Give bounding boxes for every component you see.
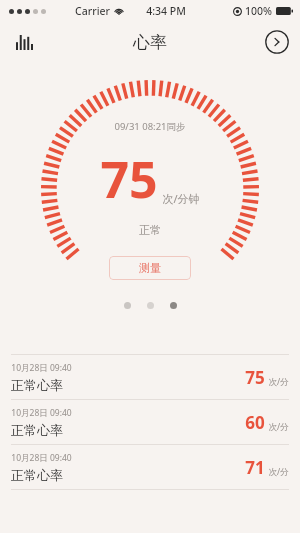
staticText: 次/分	[268, 466, 289, 478]
staticText: 10月28日 09:40	[11, 452, 72, 464]
staticText: Carrier	[75, 4, 110, 18]
staticText: 次/分	[268, 376, 289, 388]
staticText: 测量	[139, 261, 161, 275]
button[interactable]: 10月28日 09:40	[0, 355, 300, 399]
staticText: 71	[245, 456, 265, 479]
button[interactable]: Next	[264, 29, 290, 55]
staticText: 正常心率	[11, 377, 63, 393]
button[interactable]: Statistics	[8, 26, 40, 58]
staticText: 次/分钟	[162, 191, 200, 206]
button[interactable]: 测量	[109, 256, 191, 280]
staticText: 75	[100, 145, 158, 213]
button[interactable]: 10月28日 09:40	[0, 400, 300, 444]
staticText: 75	[245, 366, 265, 389]
staticText: 100%	[245, 4, 272, 18]
staticText: 正常	[139, 223, 161, 237]
staticText: 心率	[133, 32, 167, 53]
staticText: 4:34 PM	[146, 4, 186, 18]
staticText: 10月28日 09:40	[11, 362, 72, 374]
staticText: 正常心率	[11, 467, 63, 483]
button[interactable]: 10月28日 09:40	[0, 445, 300, 489]
staticText: 09/31 08:21同步	[114, 120, 186, 133]
staticText: 10月28日 09:40	[11, 407, 72, 419]
staticText: 60	[245, 411, 265, 434]
staticText: 次/分	[268, 421, 289, 433]
staticText: 正常心率	[11, 422, 63, 438]
